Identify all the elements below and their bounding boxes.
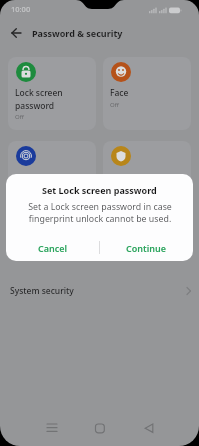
staticText: Set a Lock screen password in case finge… <box>28 201 172 224</box>
button[interactable] <box>103 57 191 130</box>
button[interactable]: Continue <box>99 235 193 261</box>
staticText: Set Lock screen password <box>42 184 157 196</box>
staticText: Continue <box>126 242 166 254</box>
button[interactable]: Cancel <box>6 235 99 261</box>
button[interactable] <box>88 417 112 441</box>
staticText: Face <box>110 87 129 99</box>
button[interactable] <box>8 57 96 130</box>
button[interactable] <box>136 417 160 441</box>
staticText: Cancel <box>38 242 68 254</box>
staticText: Lock screen password <box>15 87 63 111</box>
button[interactable] <box>103 141 191 214</box>
button[interactable] <box>40 417 64 441</box>
staticText: 10:00 <box>11 4 31 14</box>
staticText: System security <box>10 285 74 297</box>
staticText: Off <box>15 113 24 121</box>
staticText: Off <box>110 101 119 109</box>
button[interactable] <box>8 141 96 214</box>
button[interactable]: System security <box>0 280 199 301</box>
button[interactable] <box>4 24 28 42</box>
staticText: Password & security <box>32 27 123 39</box>
